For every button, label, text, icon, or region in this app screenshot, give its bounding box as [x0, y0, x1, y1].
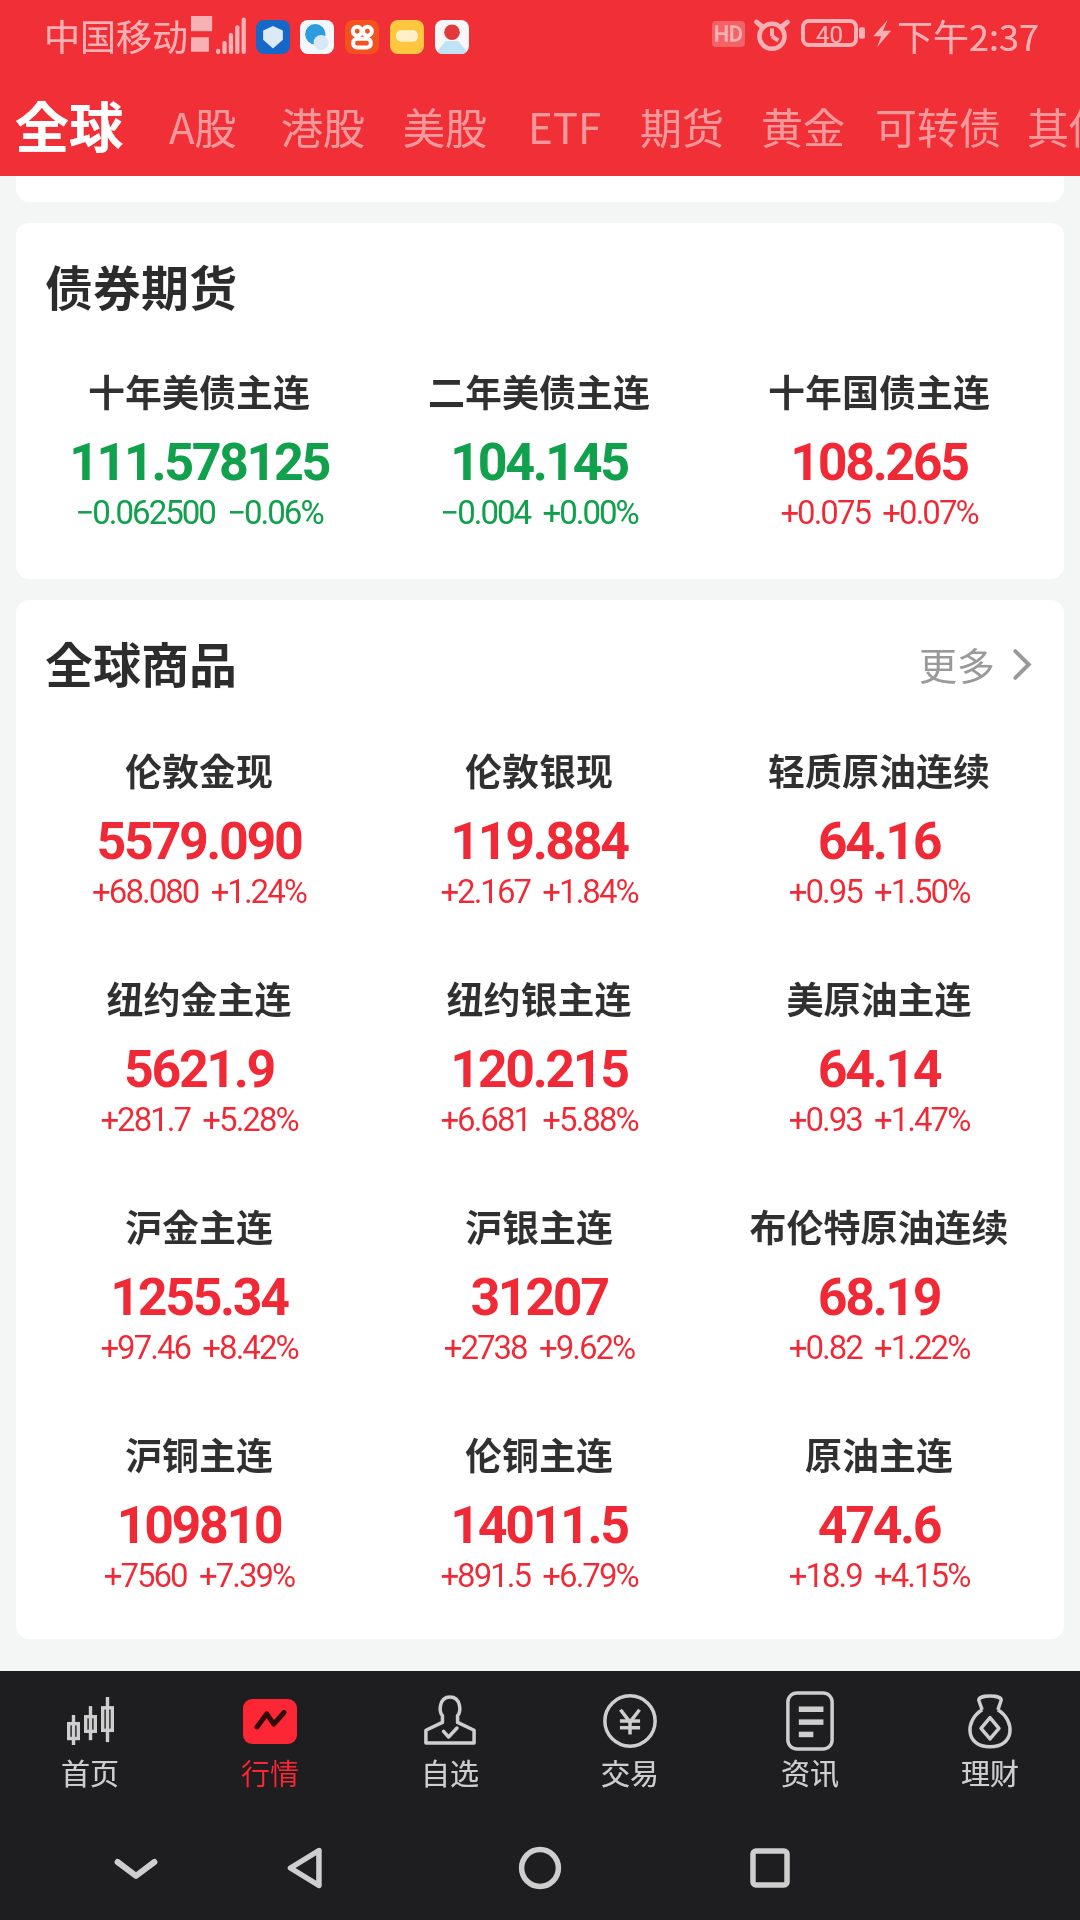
- button[interactable]: 更多: [911, 630, 1061, 690]
- staticText: 纽约金主连: [29, 971, 369, 1025]
- staticText: +0.075 +0.07%: [709, 493, 1049, 532]
- staticText: 伦敦银现: [369, 743, 709, 797]
- staticText: 可转债: [875, 95, 1002, 156]
- staticText: 14011.5: [369, 1495, 709, 1556]
- staticText: 美原油主连: [709, 971, 1049, 1025]
- button[interactable]: 美股: [403, 95, 488, 156]
- staticText: 自选: [360, 1751, 540, 1793]
- staticText: +18.9 +4.15%: [709, 1556, 1049, 1595]
- button[interactable]: A股: [169, 95, 237, 156]
- staticText: 沪金主连: [29, 1199, 369, 1253]
- staticText: 沪银主连: [369, 1199, 709, 1253]
- staticText: 资讯: [720, 1751, 900, 1793]
- staticText: +6.681 +5.88%: [369, 1100, 709, 1139]
- staticText: 原油主连: [709, 1427, 1049, 1481]
- staticText: +281.7 +5.28%: [29, 1100, 369, 1139]
- staticText: 全球: [15, 85, 123, 163]
- button[interactable]: 交易: [540, 1671, 720, 1727]
- staticText: 纽约银主连: [369, 971, 709, 1025]
- button[interactable]: ETF: [528, 95, 602, 156]
- staticText: 104.145: [369, 432, 709, 493]
- staticText: 沪铜主连: [29, 1427, 369, 1481]
- button[interactable]: 十年美债主连: [29, 364, 369, 519]
- staticText: 理财: [900, 1751, 1080, 1793]
- button[interactable]: 轻质原油连续: [709, 743, 1049, 898]
- staticText: ETF: [528, 95, 602, 156]
- staticText: 黄金: [761, 95, 846, 156]
- staticText: 行情: [180, 1751, 360, 1793]
- button[interactable]: Back: [271, 1832, 343, 1904]
- staticText: A股: [169, 95, 237, 156]
- staticText: 十年美债主连: [29, 364, 369, 418]
- staticText: 68.19: [709, 1267, 1049, 1328]
- button[interactable]: 十年国债主连: [709, 364, 1049, 519]
- staticText: +2738 +9.62%: [369, 1328, 709, 1367]
- staticText: −0.062500 −0.06%: [29, 493, 369, 532]
- staticText: +2.167 +1.84%: [369, 872, 709, 911]
- button[interactable]: 原油主连: [709, 1427, 1049, 1582]
- button[interactable]: 沪铜主连: [29, 1427, 369, 1582]
- button[interactable]: 伦敦银现: [369, 743, 709, 898]
- staticText: 下午2:37: [897, 9, 1039, 61]
- staticText: 轻质原油连续: [709, 743, 1049, 797]
- staticText: 美股: [403, 95, 488, 156]
- staticText: 108.265: [709, 432, 1049, 493]
- button[interactable]: 布伦特原油连续: [709, 1199, 1049, 1354]
- button[interactable]: 美原油主连: [709, 971, 1049, 1126]
- button[interactable]: 黄金: [761, 95, 846, 156]
- staticText: +68.080 +1.24%: [29, 872, 369, 911]
- staticText: 更多: [919, 636, 996, 691]
- button[interactable]: Recents: [734, 1832, 806, 1904]
- staticText: 布伦特原油连续: [709, 1199, 1049, 1253]
- staticText: 40: [816, 21, 843, 49]
- button[interactable]: 二年美债主连: [369, 364, 709, 519]
- button[interactable]: 纽约银主连: [369, 971, 709, 1126]
- staticText: 111.578125: [29, 432, 369, 493]
- button[interactable]: 纽约金主连: [29, 971, 369, 1126]
- button[interactable]: 沪金主连: [29, 1199, 369, 1354]
- staticText: 1255.34: [29, 1267, 369, 1328]
- button[interactable]: 自选: [360, 1671, 540, 1727]
- staticText: 64.16: [709, 811, 1049, 872]
- button[interactable]: 港股: [281, 95, 366, 156]
- staticText: 474.6: [709, 1495, 1049, 1556]
- button[interactable]: 首页: [0, 1671, 180, 1727]
- staticText: 119.884: [369, 811, 709, 872]
- button[interactable]: 资讯: [720, 1671, 900, 1727]
- button[interactable]: 全球: [15, 85, 123, 163]
- button[interactable]: 行情: [180, 1671, 360, 1727]
- staticText: −0.004 +0.00%: [369, 493, 709, 532]
- staticText: 十年国债主连: [709, 364, 1049, 418]
- button[interactable]: 沪银主连: [369, 1199, 709, 1354]
- staticText: 31207: [369, 1267, 709, 1328]
- button[interactable]: Hide keyboard: [100, 1832, 172, 1904]
- button[interactable]: 债券期货: [45, 250, 238, 320]
- staticText: 120.215: [369, 1039, 709, 1100]
- staticText: 伦铜主连: [369, 1427, 709, 1481]
- staticText: 中国移动: [44, 9, 189, 61]
- button[interactable]: 其他: [1027, 95, 1080, 156]
- staticText: 港股: [281, 95, 366, 156]
- staticText: 交易: [540, 1751, 720, 1793]
- button[interactable]: Home: [504, 1832, 576, 1904]
- button[interactable]: 可转债: [875, 95, 1002, 156]
- staticText: +0.93 +1.47%: [709, 1100, 1049, 1139]
- staticText: 首页: [0, 1751, 180, 1793]
- staticText: 64.14: [709, 1039, 1049, 1100]
- staticText: 5579.090: [29, 811, 369, 872]
- staticText: +97.46 +8.42%: [29, 1328, 369, 1367]
- staticText: HD: [714, 22, 743, 47]
- staticText: +7560 +7.39%: [29, 1556, 369, 1595]
- button[interactable]: 期货: [640, 95, 725, 156]
- staticText: 伦敦金现: [29, 743, 369, 797]
- button[interactable]: 伦铜主连: [369, 1427, 709, 1582]
- staticText: 二年美债主连: [369, 364, 709, 418]
- staticText: 109810: [29, 1495, 369, 1556]
- button[interactable]: 理财: [900, 1671, 1080, 1727]
- button[interactable]: 伦敦金现: [29, 743, 369, 898]
- button[interactable]: 全球商品: [45, 627, 238, 697]
- staticText: +891.5 +6.79%: [369, 1556, 709, 1595]
- staticText: 其他: [1027, 95, 1080, 156]
- staticText: 5621.9: [29, 1039, 369, 1100]
- staticText: +0.95 +1.50%: [709, 872, 1049, 911]
